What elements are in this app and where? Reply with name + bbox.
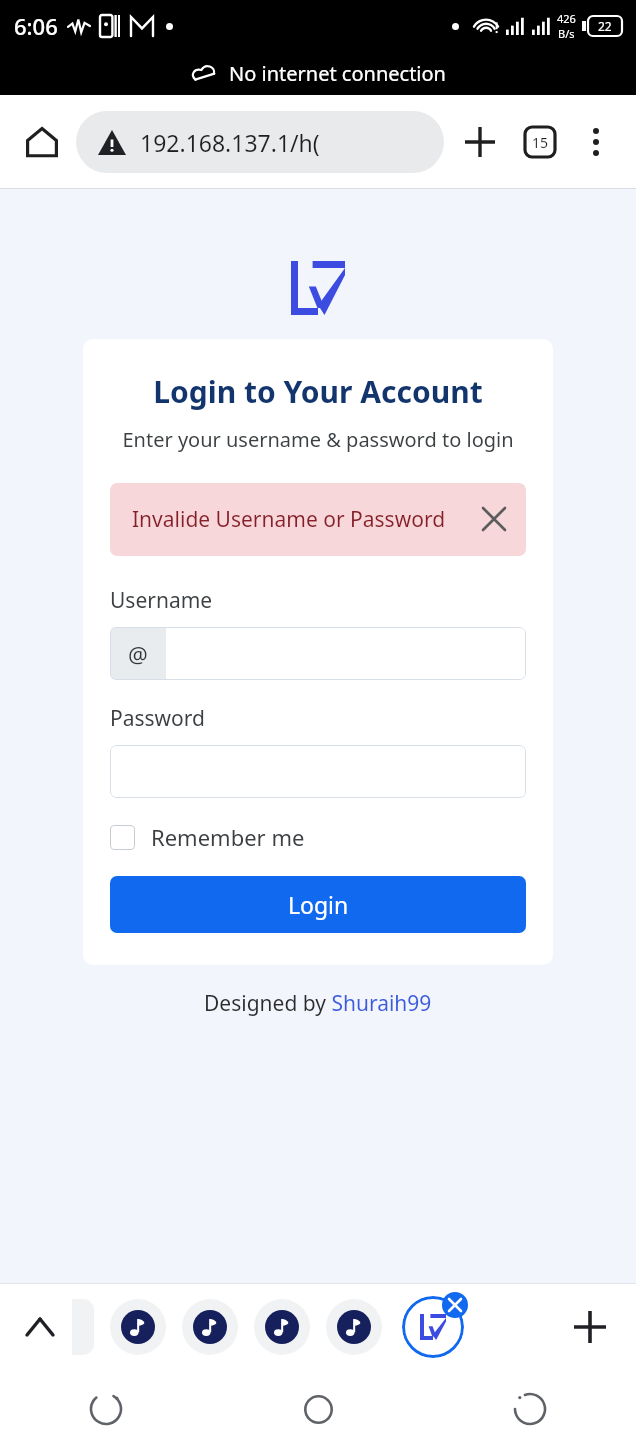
- button[interactable]: Music tab: [254, 1299, 310, 1355]
- button[interactable]: New tab: [454, 116, 506, 168]
- button[interactable]: 192.168.137.1/h(: [76, 111, 444, 173]
- button[interactable]: Music tab: [326, 1299, 382, 1355]
- staticText: 15: [532, 133, 549, 152]
- staticText: 426: [557, 11, 576, 26]
- button[interactable]: Close tab: [442, 1292, 468, 1318]
- button[interactable]: Tabs: 15: [514, 116, 566, 168]
- button[interactable]: More options: [572, 118, 620, 166]
- button[interactable]: Recent apps: [0, 1370, 212, 1448]
- button[interactable]: Add tab: [562, 1299, 618, 1355]
- staticText: Username: [110, 586, 213, 615]
- staticText: Enter your username & password to login: [110, 426, 526, 453]
- staticText: 6:06: [14, 11, 58, 41]
- staticText: No internet connection: [229, 60, 446, 87]
- staticText: 22: [598, 18, 612, 34]
- button[interactable]: Music tab: [182, 1299, 238, 1355]
- staticText: 192.168.137.1/h(: [140, 127, 320, 158]
- button[interactable]: Login: [110, 876, 526, 933]
- button[interactable]: Expand tabs: [14, 1301, 66, 1353]
- staticText: Remember me: [151, 822, 305, 852]
- button[interactable]: Back: [424, 1370, 636, 1448]
- staticText: Invalide Username or Password: [132, 505, 462, 534]
- button[interactable]: Remember me: [110, 822, 305, 852]
- button[interactable]: Music tab: [110, 1299, 166, 1355]
- staticText: Password: [110, 704, 205, 733]
- button[interactable]: Current tab: [402, 1296, 464, 1358]
- button[interactable]: Home: [212, 1370, 424, 1448]
- staticText: @: [128, 639, 148, 669]
- button[interactable]: Designed by Shuraih99: [204, 989, 432, 1018]
- button[interactable]: Dismiss alert: [480, 505, 508, 533]
- button[interactable]: @: [110, 627, 526, 680]
- staticText: Login to Your Account: [110, 371, 526, 412]
- staticText: B/s: [558, 26, 575, 41]
- button[interactable]: Home: [16, 116, 68, 168]
- staticText: Login: [288, 889, 349, 920]
- button[interactable]: [110, 745, 526, 798]
